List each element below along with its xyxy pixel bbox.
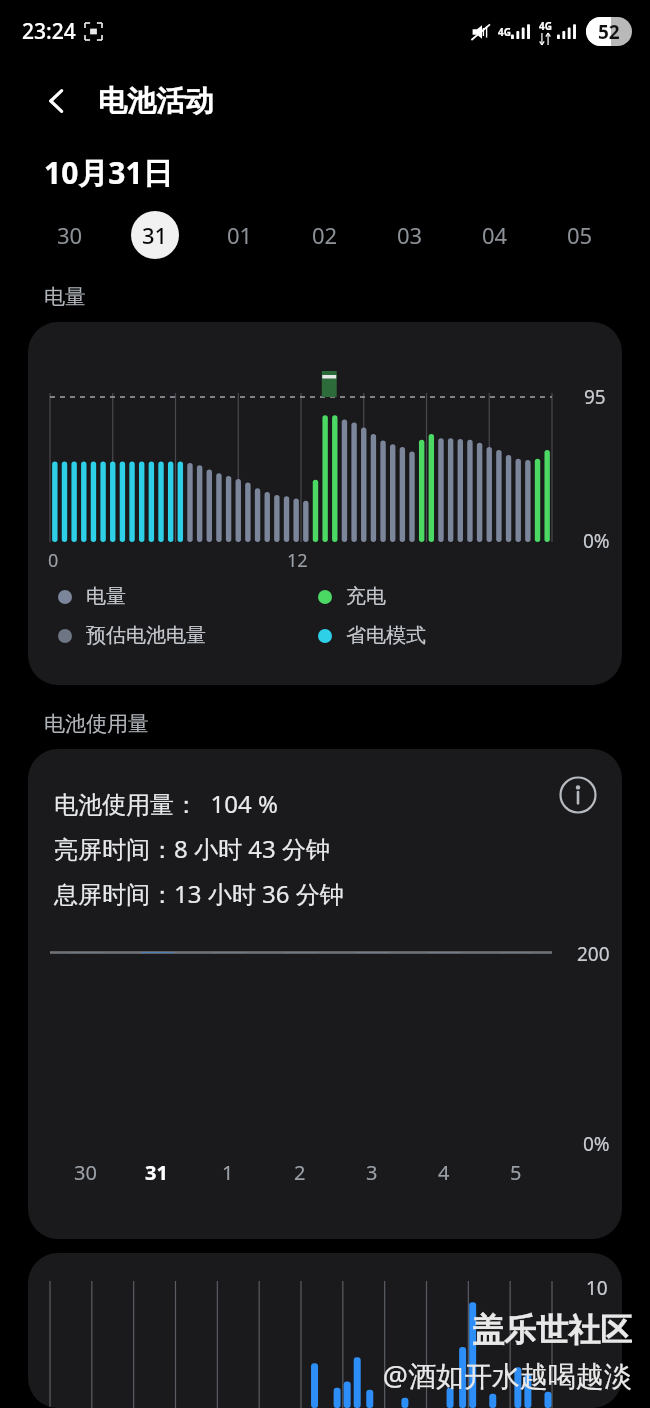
staticText: 充电 — [346, 584, 386, 609]
staticText: 95 — [584, 384, 606, 410]
staticText: 5 — [510, 1159, 522, 1186]
staticText: 预估电池电量 — [86, 623, 206, 648]
staticText: 电池活动 — [98, 83, 214, 120]
button[interactable]: 05 — [537, 204, 622, 266]
staticText: 52 — [598, 19, 620, 45]
staticText: 31 — [142, 220, 168, 250]
staticText: 4G — [539, 19, 552, 33]
button[interactable]: 95 — [28, 322, 622, 685]
staticText: 0 — [48, 548, 59, 573]
staticText: 30 — [57, 220, 83, 250]
staticText: 2 — [294, 1159, 306, 1186]
staticText: 3 — [366, 1159, 378, 1186]
staticText: 01 — [227, 220, 253, 250]
staticText: 200 — [577, 941, 610, 967]
button[interactable]: 03 — [367, 204, 452, 266]
staticText: 0% — [583, 1131, 610, 1157]
staticText: 电量 — [44, 284, 86, 310]
button[interactable]: 04 — [452, 204, 537, 266]
staticText: 23:24 — [22, 17, 76, 46]
staticText: 04 — [482, 220, 508, 250]
staticText: 03 — [397, 220, 423, 250]
staticText: 10月31日 — [44, 152, 173, 193]
staticText: 12 — [287, 548, 308, 573]
button[interactable]: 30 — [28, 204, 112, 266]
staticText: 02 — [312, 220, 338, 250]
staticText: 省电模式 — [346, 623, 426, 648]
staticText: 4G — [498, 25, 511, 39]
staticText: 05 — [567, 220, 593, 250]
staticText: 1 — [222, 1159, 234, 1186]
button[interactable]: 02 — [282, 204, 367, 266]
staticText: 息屏时间：13 小时 36 分钟 — [54, 877, 344, 910]
staticText: 电池使用量： 104 % — [54, 787, 278, 820]
staticText: 亮屏时间：8 小时 43 分钟 — [54, 832, 330, 865]
staticText: 30 — [74, 1159, 97, 1186]
button[interactable]: 01 — [197, 204, 282, 266]
button[interactable]: Back — [34, 78, 80, 124]
staticText: 10 — [586, 1275, 608, 1301]
staticText: 31 — [145, 1159, 168, 1186]
staticText: 0% — [583, 528, 610, 554]
button[interactable]: 31 — [112, 204, 197, 266]
staticText: 电量 — [86, 584, 126, 609]
staticText: 盖乐世社区 — [472, 1310, 632, 1350]
staticText: 4 — [438, 1159, 450, 1186]
button[interactable]: Info — [556, 773, 600, 817]
staticText: 电池使用量 — [44, 711, 149, 737]
staticText: @酒如开水越喝越淡 — [382, 1356, 632, 1394]
